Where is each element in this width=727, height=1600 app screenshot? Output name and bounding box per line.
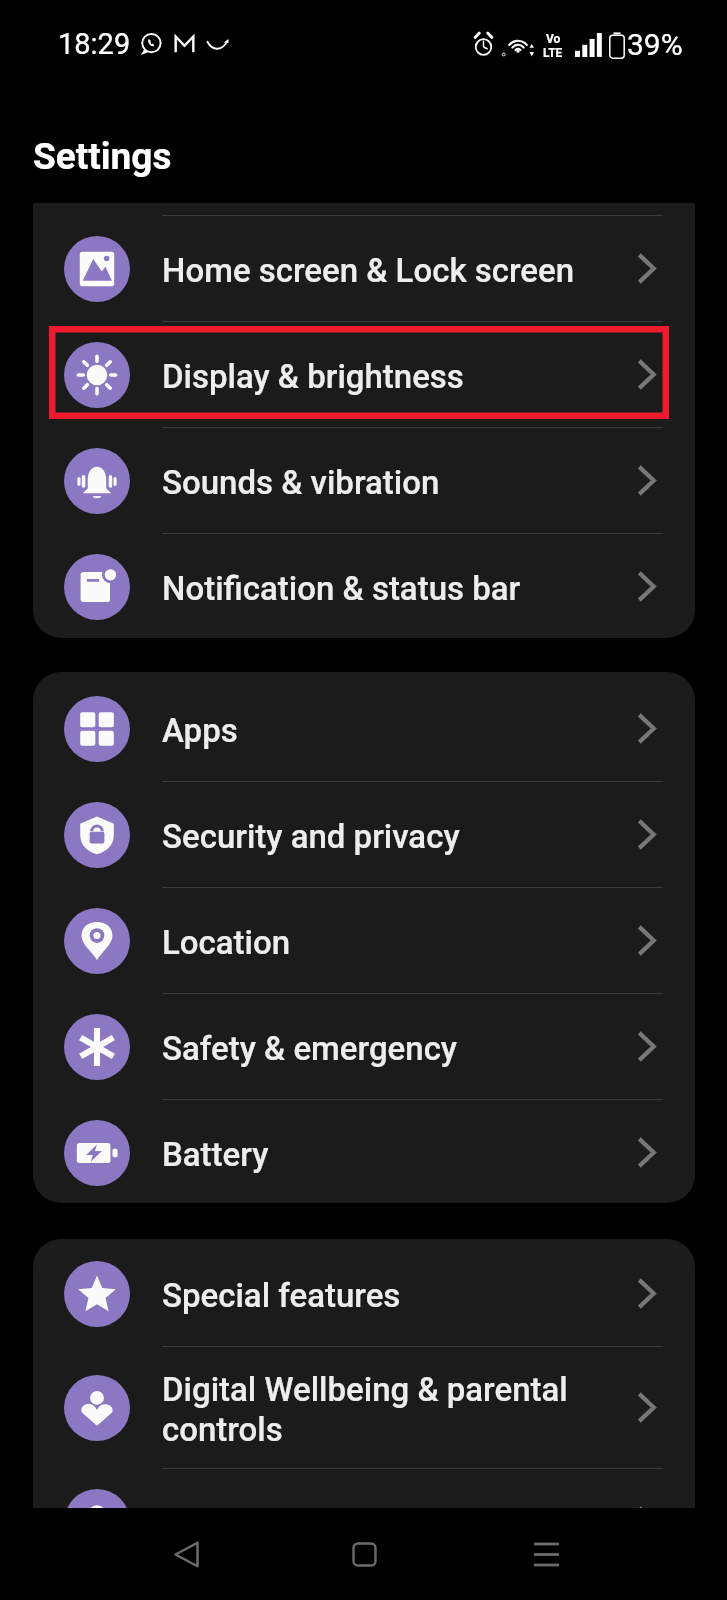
button[interactable]: Digital Wellbeing & parental controls <box>33 1347 695 1468</box>
staticText: LTE <box>543 46 563 58</box>
staticText: Safety & emergency <box>162 1029 613 1068</box>
staticText: Battery <box>162 1135 613 1174</box>
button[interactable]: Safety & emergency <box>33 994 695 1099</box>
staticText: Digital Wellbeing & parental controls <box>162 1370 613 1450</box>
button[interactable]: Home screen & Lock screen <box>33 216 695 321</box>
staticText: Location <box>162 923 613 962</box>
button[interactable]: Home <box>318 1509 410 1600</box>
staticText: Notification & status bar <box>162 569 613 608</box>
button[interactable]: Notification & status bar <box>33 534 695 638</box>
staticText: Settings <box>33 135 172 178</box>
button[interactable]: Security and privacy <box>33 782 695 887</box>
button[interactable]: Apps <box>33 676 695 781</box>
button[interactable]: Users & accounts <box>33 1469 695 1508</box>
button[interactable]: Back <box>140 1509 232 1600</box>
staticText: Special features <box>162 1276 613 1315</box>
button[interactable]: Recent apps <box>500 1509 592 1600</box>
button[interactable]: Display & brightness <box>33 322 695 427</box>
staticText: Apps <box>162 711 613 750</box>
staticText: Sounds & vibration <box>162 463 613 502</box>
button[interactable]: Location <box>33 888 695 993</box>
button[interactable]: Battery <box>33 1100 695 1203</box>
staticText: 18:29 <box>58 27 131 61</box>
staticText: Security and privacy <box>162 817 613 856</box>
staticText: 39% <box>627 27 683 62</box>
staticText: Vo <box>546 32 561 46</box>
staticText: Display & brightness <box>162 357 613 396</box>
button[interactable]: Sounds & vibration <box>33 428 695 533</box>
staticText: Home screen & Lock screen <box>162 251 613 290</box>
button[interactable]: Special features <box>33 1241 695 1346</box>
